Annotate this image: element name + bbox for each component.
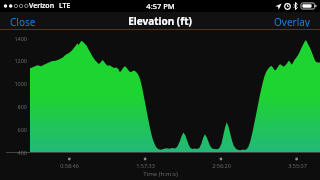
button[interactable]: Overlay — [264, 12, 320, 30]
staticText: 3:55:07 — [288, 162, 307, 169]
button[interactable]: Close — [0, 12, 46, 30]
staticText: 1:57:33 — [136, 162, 155, 169]
staticText: Time (h:m:s) — [143, 170, 178, 178]
staticText: Elevation (ft) — [128, 14, 192, 28]
staticText: 1000 — [14, 80, 27, 87]
staticText: 4:57 PM — [146, 1, 175, 11]
other: Bluetooth — [293, 2, 298, 10]
staticText: Overlay — [274, 15, 310, 27]
staticText: 1400 — [14, 35, 27, 42]
staticText: 600 — [17, 126, 27, 133]
other: Battery — [301, 2, 317, 10]
staticText: 0:58:46 — [60, 162, 79, 169]
staticText: 800 — [17, 103, 27, 110]
staticText: Verizon — [29, 1, 55, 11]
other: Location — [275, 3, 282, 10]
staticText: 1200 — [14, 57, 27, 64]
staticText: 2:56:20 — [212, 162, 231, 169]
staticText: LTE — [59, 1, 71, 11]
staticText: 400 — [17, 149, 27, 156]
staticText: Close — [10, 15, 36, 27]
other: Alarm — [284, 3, 291, 10]
